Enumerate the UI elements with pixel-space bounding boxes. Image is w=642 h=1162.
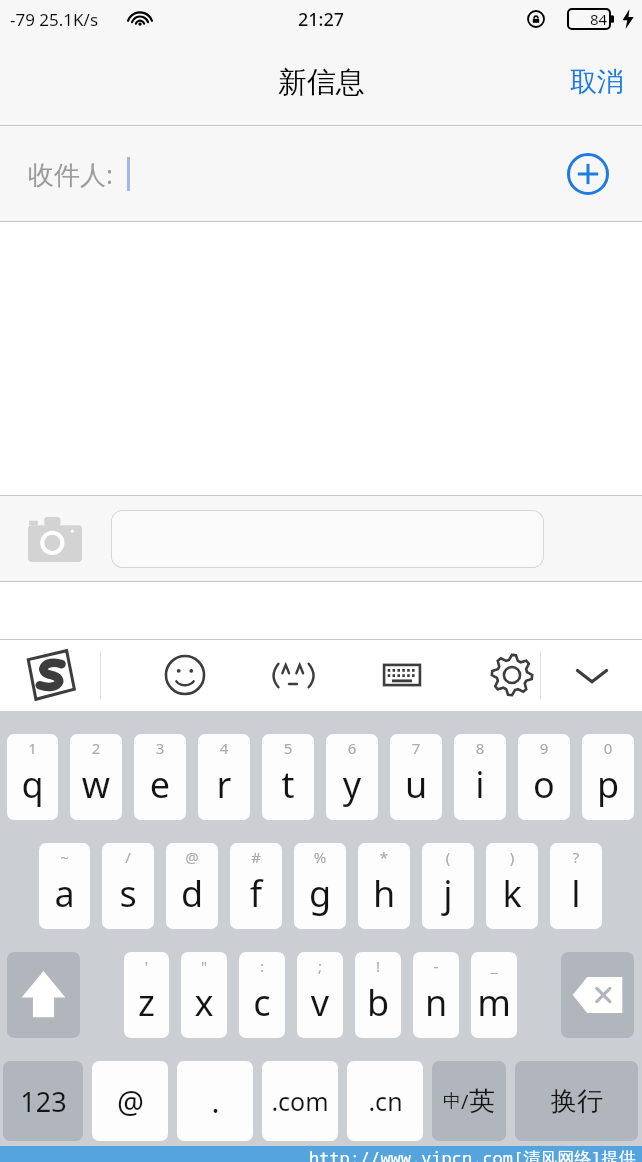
staticText: 123 — [20, 1083, 67, 1120]
button[interactable]: / — [102, 843, 154, 929]
staticText: 6 — [326, 738, 378, 758]
staticText: 7 — [390, 738, 442, 758]
button[interactable]: 换行 — [515, 1061, 638, 1141]
button[interactable]: Keyboard layout — [374, 647, 430, 703]
staticText: - — [413, 956, 459, 976]
button[interactable]: 123 — [3, 1061, 83, 1141]
button[interactable]: 收件人: — [0, 126, 642, 222]
button[interactable]: ? — [550, 843, 602, 929]
staticText: ( — [422, 847, 474, 867]
button[interactable]: 1 — [7, 734, 58, 820]
staticText: 8 — [454, 738, 506, 758]
staticText: j — [422, 869, 474, 918]
button[interactable]: 7 — [390, 734, 442, 820]
button[interactable]: ' — [124, 952, 169, 1038]
staticText: x — [181, 978, 227, 1027]
staticText: o — [518, 760, 570, 809]
button[interactable]: ( — [422, 843, 474, 929]
staticText: * — [358, 847, 410, 867]
staticText: ' — [124, 956, 169, 976]
staticText: ! — [355, 956, 401, 976]
button[interactable]: 4 — [198, 734, 250, 820]
button[interactable]: # — [230, 843, 282, 929]
staticText: 0 — [582, 738, 634, 758]
button[interactable]: ~ — [39, 843, 90, 929]
button[interactable]: Hide keyboard — [564, 647, 620, 703]
staticText: # — [230, 847, 282, 867]
staticText: / — [461, 1088, 469, 1115]
button[interactable]: Settings — [484, 647, 540, 703]
button[interactable]: Sogou input — [18, 643, 82, 707]
button[interactable]: Add contact — [567, 153, 609, 195]
staticText: 1 — [7, 738, 58, 758]
staticText: .cn — [368, 1084, 403, 1118]
staticText: 9 — [518, 738, 570, 758]
staticText: http://www.vipcn.com[清风网络]提供 — [309, 1146, 636, 1162]
staticText: d — [166, 869, 218, 918]
staticText: 英 — [469, 1085, 495, 1118]
button[interactable]: 6 — [326, 734, 378, 820]
button[interactable]: 9 — [518, 734, 570, 820]
button[interactable]: 0 — [582, 734, 634, 820]
button[interactable]: _ — [471, 952, 517, 1038]
button[interactable]: ; — [297, 952, 343, 1038]
button[interactable]: Camera — [28, 516, 82, 562]
button[interactable]: . — [177, 1061, 253, 1141]
staticText: u — [390, 760, 442, 809]
button[interactable]: : — [239, 952, 285, 1038]
staticText: p — [582, 760, 634, 809]
button[interactable]: - — [413, 952, 459, 1038]
button[interactable]: 8 — [454, 734, 506, 820]
button[interactable]: ! — [355, 952, 401, 1038]
staticText: 新信息 — [278, 64, 365, 101]
staticText: 5 — [262, 738, 314, 758]
staticText: r — [198, 760, 250, 809]
staticText: 2 — [70, 738, 122, 758]
staticText: s — [102, 869, 154, 918]
staticText: @ — [166, 847, 218, 867]
staticText: i — [454, 760, 506, 809]
staticText: % — [294, 847, 346, 867]
button[interactable]: @ — [166, 843, 218, 929]
staticText: l — [550, 869, 602, 918]
button[interactable]: 取消 — [552, 51, 642, 113]
staticText: / — [102, 847, 154, 867]
staticText: _ — [471, 956, 517, 976]
staticText: " — [181, 956, 227, 976]
button[interactable]: Kaomoji — [265, 647, 321, 703]
button[interactable]: 5 — [262, 734, 314, 820]
staticText: k — [486, 869, 538, 918]
button[interactable]: @ — [92, 1061, 168, 1141]
button[interactable]: " — [181, 952, 227, 1038]
staticText: f — [230, 869, 282, 918]
staticText: n — [413, 978, 459, 1027]
button[interactable]: Emoji — [157, 647, 213, 703]
button[interactable]: .cn — [347, 1061, 423, 1141]
button[interactable]: * — [358, 843, 410, 929]
button[interactable]: Shift — [7, 952, 80, 1038]
staticText: 21:27 — [298, 7, 345, 32]
staticText: ~ — [39, 847, 90, 867]
staticText: 中 — [443, 1090, 461, 1113]
staticText: 收件人: — [28, 156, 113, 192]
button[interactable]: 中 — [432, 1061, 506, 1141]
staticText: 4 — [198, 738, 250, 758]
button[interactable]: % — [294, 843, 346, 929]
button[interactable]: 3 — [134, 734, 186, 820]
button[interactable]: ) — [486, 843, 538, 929]
staticText: .com — [271, 1084, 329, 1118]
staticText: w — [70, 760, 122, 809]
staticText: 换行 — [551, 1085, 603, 1118]
button[interactable]: Backspace — [561, 952, 634, 1038]
staticText: 84 — [590, 9, 608, 29]
staticText: ) — [486, 847, 538, 867]
button[interactable] — [111, 510, 544, 568]
staticText: a — [39, 869, 90, 918]
button[interactable]: .com — [262, 1061, 338, 1141]
button[interactable]: 2 — [70, 734, 122, 820]
staticText: 3 — [134, 738, 186, 758]
staticText: b — [355, 978, 401, 1027]
staticText: 取消 — [570, 65, 624, 99]
staticText: t — [262, 760, 314, 809]
staticText: y — [326, 760, 378, 809]
